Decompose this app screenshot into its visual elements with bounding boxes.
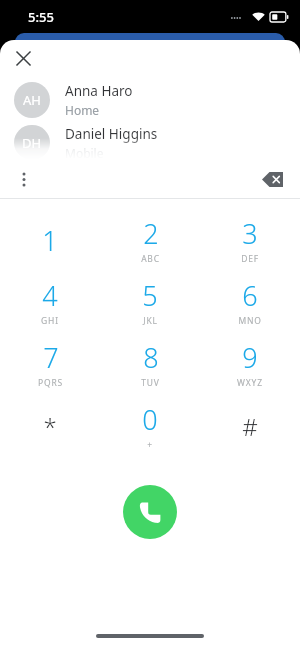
staticText: Mobile — [65, 145, 104, 160]
staticText: 4 — [42, 277, 58, 314]
staticText: 9 — [242, 339, 258, 376]
staticText: Home — [65, 102, 100, 118]
staticText: # — [242, 410, 258, 443]
staticText: Daniel Higgins — [65, 125, 158, 143]
staticText: PQRS — [38, 377, 63, 389]
button[interactable]: 0 — [100, 395, 200, 457]
staticText: + — [147, 439, 153, 451]
staticText: 6 — [242, 277, 258, 314]
staticText: * — [43, 410, 57, 443]
button[interactable]: 9 — [200, 333, 300, 395]
staticText: DH — [22, 134, 42, 152]
staticText: AH — [23, 91, 41, 109]
button[interactable]: More options — [10, 165, 38, 193]
staticText: 3 — [242, 215, 258, 252]
staticText: MNO — [238, 315, 262, 327]
staticText: 0 — [142, 401, 158, 438]
staticText: 2 — [143, 215, 159, 252]
staticText: 7 — [43, 339, 59, 376]
staticText: 8 — [143, 339, 159, 376]
staticText: JKL — [143, 315, 158, 327]
staticText: 1 — [42, 222, 58, 259]
button[interactable]: 4 — [0, 271, 100, 333]
staticText: ABC — [141, 253, 160, 265]
staticText: 5 — [142, 277, 158, 314]
button[interactable]: 5 — [100, 271, 200, 333]
button[interactable]: DH — [0, 125, 300, 160]
staticText: GHI — [41, 315, 59, 327]
button[interactable]: # — [200, 395, 300, 457]
staticText: TUV — [141, 377, 160, 389]
button[interactable]: Backspace — [255, 162, 289, 196]
staticText: DEF — [241, 253, 259, 265]
button[interactable]: AH — [0, 75, 300, 125]
button[interactable]: 2 — [100, 209, 200, 271]
button[interactable]: 8 — [100, 333, 200, 395]
button[interactable]: 3 — [200, 209, 300, 271]
staticText: 5:55 — [28, 8, 54, 26]
staticText: Anna Haro — [65, 82, 133, 100]
button[interactable]: 6 — [200, 271, 300, 333]
button[interactable]: * — [0, 395, 100, 457]
button[interactable]: 7 — [0, 333, 100, 395]
button[interactable]: Close — [8, 43, 38, 73]
button[interactable]: Call — [123, 485, 177, 539]
button[interactable]: 1 — [0, 209, 100, 271]
staticText: WXYZ — [237, 377, 263, 389]
